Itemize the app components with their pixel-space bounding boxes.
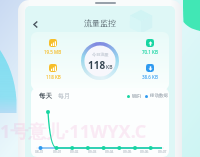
staticText: 09-05: [123, 150, 132, 154]
button[interactable]: Back: [27, 16, 43, 32]
button[interactable]: 118 KB: [37, 64, 69, 80]
staticText: 09-01: [53, 150, 62, 154]
button[interactable]: 移动数据: [145, 93, 168, 99]
button[interactable]: 每月: [58, 92, 70, 100]
button[interactable]: 19.5 MB: [37, 39, 69, 55]
staticText: 1号意儿·11WYX.C: [0, 119, 147, 144]
staticText: 移动数据: [150, 93, 168, 99]
button[interactable]: 每天: [39, 92, 52, 100]
staticText: 09-04: [105, 150, 114, 154]
staticText: 09-07: [158, 150, 167, 154]
staticText: 08-31: [35, 150, 44, 154]
staticText: 09-06: [140, 150, 149, 154]
staticText: 38.6 KB: [142, 74, 158, 80]
button[interactable]: 70.1 KB: [134, 39, 166, 55]
staticText: 09-02: [70, 150, 79, 154]
staticText: 流量监控: [25, 18, 175, 28]
staticText: 118: [88, 58, 106, 72]
staticText: 19.5 MB: [44, 49, 62, 55]
staticText: 118 KB: [46, 74, 61, 80]
staticText: WiFi: [132, 93, 141, 99]
staticText: 09-03: [88, 150, 97, 154]
staticText: KB: [106, 64, 113, 71]
button[interactable]: 38.6 KB: [134, 64, 166, 80]
button[interactable]: WiFi: [127, 93, 141, 99]
staticText: 70.1 KB: [142, 49, 158, 55]
staticText: 今日流量: [92, 52, 109, 57]
